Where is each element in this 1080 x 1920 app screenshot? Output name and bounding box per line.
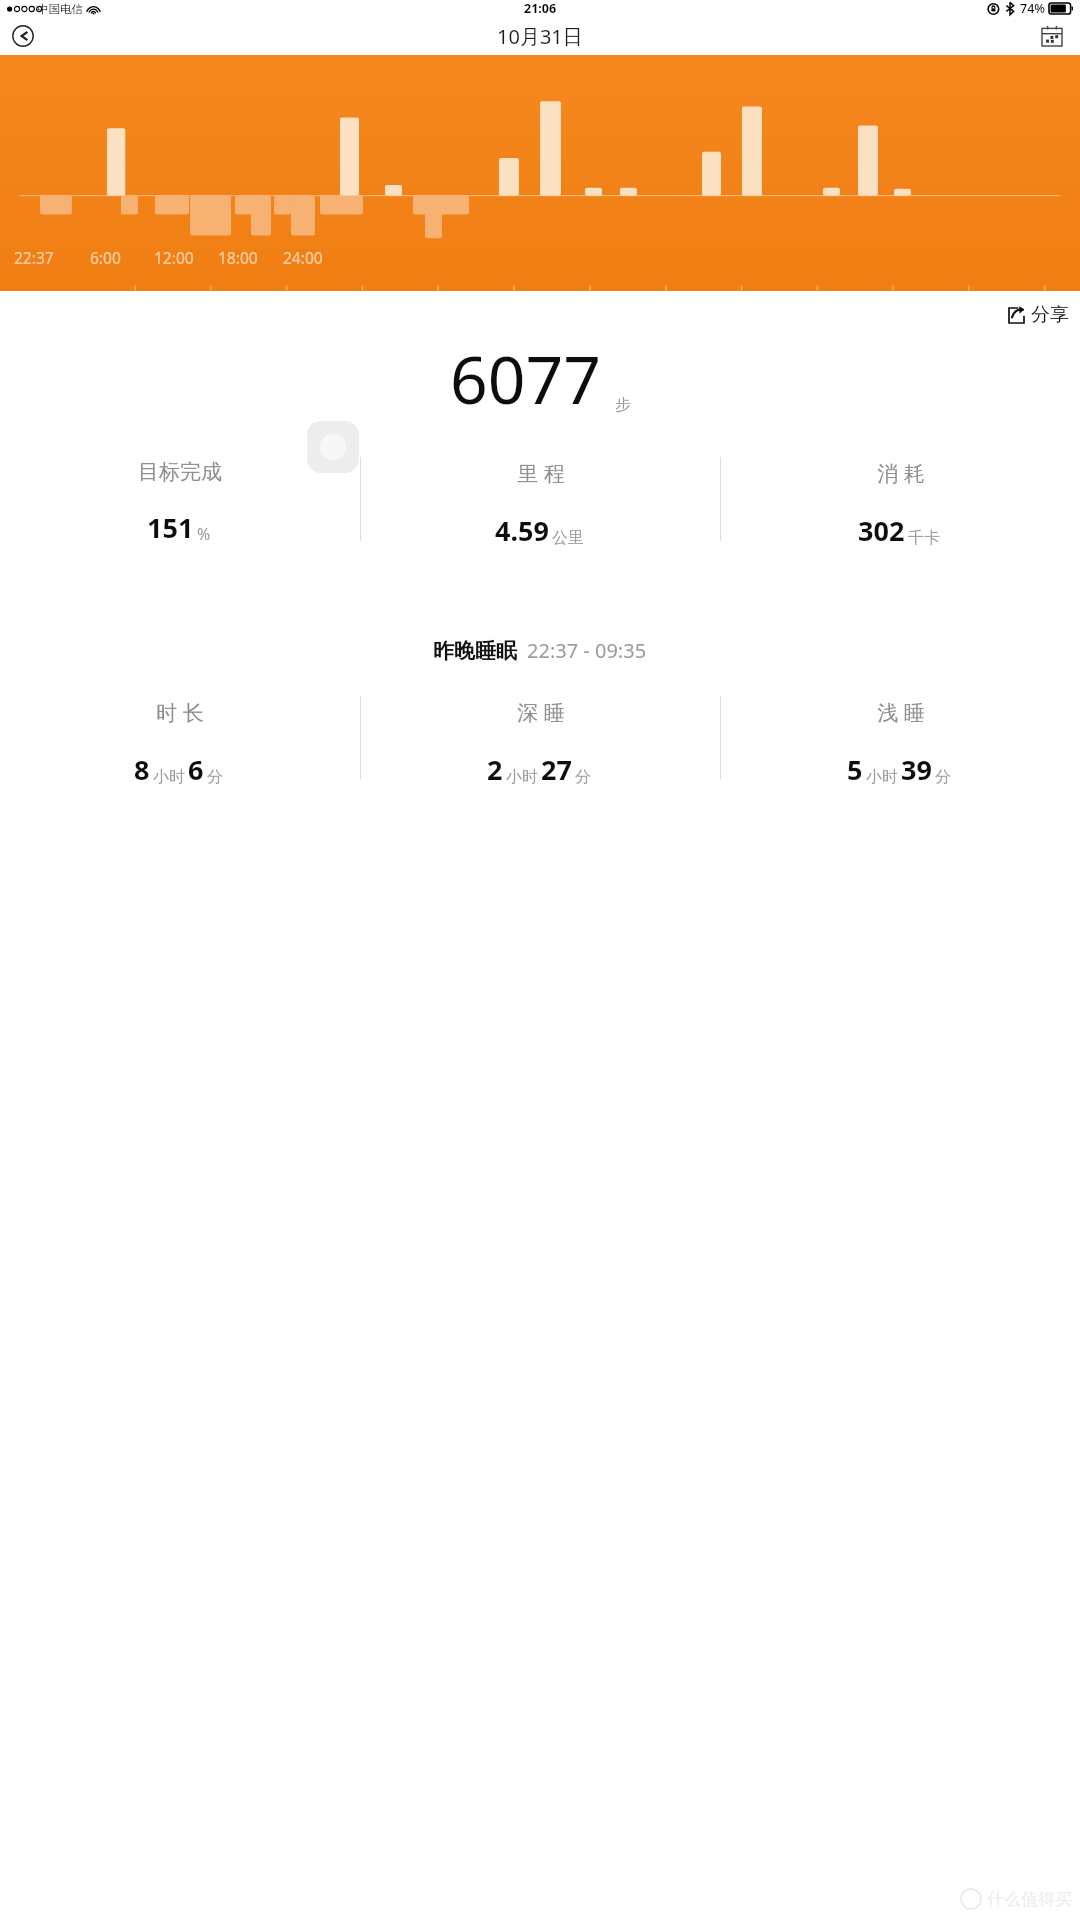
button[interactable]: Back: [12, 25, 34, 47]
staticText: 151: [147, 509, 194, 546]
button[interactable]: 目标完成: [0, 449, 360, 549]
staticText: 公里: [552, 528, 584, 548]
staticText: 什么值得买: [987, 1889, 1072, 1910]
button[interactable]: 浅 睡: [721, 688, 1080, 788]
staticText: 里 程: [517, 459, 565, 488]
button[interactable]: 里 程: [361, 449, 720, 549]
button[interactable]: 时 长: [0, 688, 360, 788]
button[interactable]: Calendar: [1042, 26, 1062, 46]
staticText: 时 长: [156, 698, 204, 727]
staticText: 消 耗: [877, 459, 925, 488]
staticText: 21:06: [524, 0, 557, 17]
staticText: 分享: [1031, 303, 1069, 327]
staticText: 步: [615, 395, 631, 415]
staticText: 目标完成: [138, 459, 222, 485]
button[interactable]: 消 耗: [721, 449, 1080, 549]
staticText: 6:00: [90, 247, 121, 268]
button[interactable]: 分享: [1005, 299, 1073, 331]
staticText: 昨晚睡眠: [433, 638, 517, 664]
staticText: 39: [901, 751, 932, 788]
staticText: 分: [935, 767, 951, 787]
staticText: 中国电信: [37, 2, 83, 16]
staticText: 8: [134, 751, 150, 788]
staticText: 6077: [450, 333, 602, 423]
button[interactable]: Assistive Touch: [307, 421, 359, 473]
button[interactable]: 深 睡: [361, 688, 720, 788]
staticText: %: [197, 523, 211, 545]
staticText: 22:37: [14, 247, 54, 268]
staticText: 74%: [1020, 0, 1045, 17]
staticText: 小时: [866, 767, 898, 787]
staticText: 5: [847, 751, 863, 788]
staticText: 分: [575, 767, 591, 787]
staticText: 千卡: [908, 528, 940, 548]
staticText: 6: [188, 751, 204, 788]
staticText: 4.59: [495, 512, 549, 549]
staticText: 浅 睡: [877, 698, 925, 727]
staticText: 24:00: [283, 247, 323, 268]
staticText: 分: [207, 767, 223, 787]
staticText: 小时: [153, 767, 185, 787]
staticText: 302: [858, 512, 905, 549]
staticText: 12:00: [154, 247, 194, 268]
staticText: 2: [487, 751, 503, 788]
staticText: 深 睡: [517, 698, 565, 727]
staticText: 27: [541, 751, 572, 788]
staticText: 22:37 - 09:35: [527, 637, 647, 664]
staticText: 小时: [506, 767, 538, 787]
staticText: 10月31日: [497, 23, 583, 50]
staticText: 18:00: [218, 247, 258, 268]
